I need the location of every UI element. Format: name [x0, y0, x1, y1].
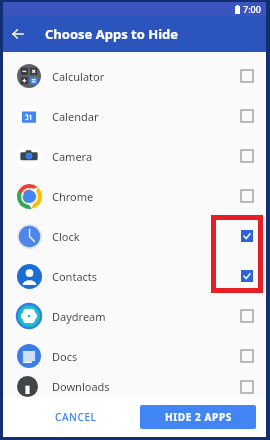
staticText: 7:00	[243, 3, 261, 15]
button[interactable]: Toggle Daydream	[234, 303, 260, 329]
button[interactable]: Camera	[3, 136, 266, 176]
button[interactable]: Toggle Clock	[234, 223, 260, 249]
staticText: Calendar	[52, 109, 99, 124]
button[interactable]: Clock	[3, 216, 266, 256]
button[interactable]: Toggle Docs	[234, 343, 260, 369]
button[interactable]: Contacts	[3, 256, 266, 296]
button[interactable]: Toggle Camera	[234, 143, 260, 169]
staticText: CANCEL	[55, 410, 97, 424]
button[interactable]: Docs	[3, 336, 266, 376]
staticText: Docs	[52, 349, 78, 364]
staticText: Downloads	[52, 379, 110, 394]
button[interactable]: CANCEL	[49, 405, 103, 429]
button[interactable]: Calendar	[3, 96, 266, 136]
staticText: HIDE 2 APPS	[165, 410, 232, 424]
button[interactable]: Toggle Chrome	[234, 183, 260, 209]
button[interactable]: Calculator	[3, 56, 266, 96]
staticText: Chrome	[52, 189, 94, 204]
staticText: Clock	[52, 229, 80, 244]
button[interactable]: Toggle Contacts	[234, 263, 260, 289]
staticText: Calculator	[52, 69, 105, 84]
staticText: Choose Apps to Hide	[45, 25, 179, 43]
button[interactable]: Back	[3, 19, 33, 49]
staticText: Daydream	[52, 309, 106, 324]
button[interactable]: Toggle Downloads	[234, 376, 260, 397]
button[interactable]: Daydream	[3, 296, 266, 336]
button[interactable]: Toggle Calendar	[234, 103, 260, 129]
staticText: Contacts	[52, 269, 98, 284]
button[interactable]: Chrome	[3, 176, 266, 216]
staticText: Camera	[52, 149, 93, 164]
button[interactable]: HIDE 2 APPS	[140, 405, 256, 429]
button[interactable]: Toggle Calculator	[234, 63, 260, 89]
button[interactable]: Downloads	[3, 376, 266, 397]
